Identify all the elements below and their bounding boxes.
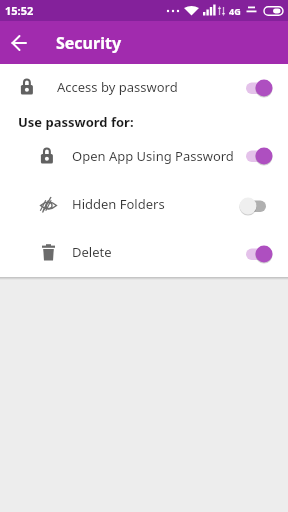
staticText: Use password for: [18,113,134,131]
staticText: 15:52 [5,3,34,18]
button[interactable]: Hidden Folders [0,178,288,230]
button[interactable] [240,78,272,98]
button[interactable]: Open App Using Password [0,134,288,178]
staticText: Access by password [57,78,178,96]
button[interactable] [240,244,272,264]
button[interactable]: Delete [0,230,288,274]
button[interactable] [240,146,272,166]
button[interactable] [0,21,38,64]
staticText: Delete [72,243,112,261]
button[interactable] [240,196,272,216]
staticText: 4G [229,5,241,17]
staticText: Security [56,32,122,54]
button[interactable]: Access by password [0,64,288,110]
staticText: Hidden Folders [72,195,165,213]
staticText: Open App Using Password [72,147,234,165]
